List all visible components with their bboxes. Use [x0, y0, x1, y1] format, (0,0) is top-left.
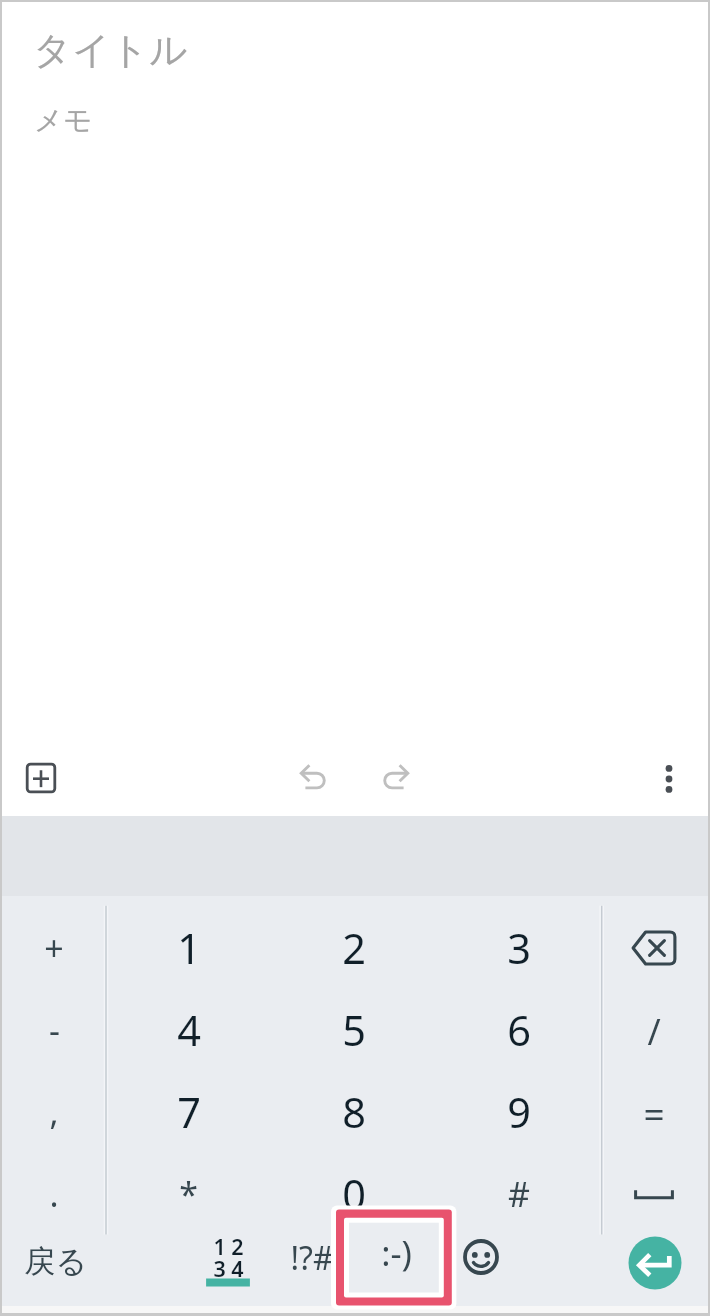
staticText: 4	[177, 1002, 201, 1059]
staticText: -	[49, 1007, 60, 1053]
button[interactable]: More options	[638, 748, 700, 810]
staticText: !?#	[290, 1236, 334, 1280]
staticText: *	[179, 1171, 198, 1217]
button[interactable]: Redo	[365, 746, 427, 808]
staticText: ,	[49, 1089, 59, 1135]
staticText: 戻る	[24, 1242, 87, 1281]
button[interactable]: =	[601, 1071, 707, 1153]
button[interactable]: Switch input mode	[186, 1235, 270, 1306]
button[interactable]: 3	[436, 907, 601, 989]
staticText: 1 2 3 4	[213, 1232, 244, 1283]
button[interactable]: :-)	[354, 1222, 438, 1282]
button[interactable]: !?#	[270, 1222, 354, 1293]
button[interactable]: 4	[106, 989, 271, 1071]
button[interactable]: 9	[436, 1071, 601, 1153]
button[interactable]: .	[2, 1153, 106, 1235]
button[interactable]: ,	[2, 1071, 106, 1153]
button[interactable]: 6	[436, 989, 601, 1071]
staticText: 0	[342, 1166, 366, 1223]
staticText: =	[643, 1088, 665, 1138]
button[interactable]: 戻る	[3, 1226, 107, 1297]
button[interactable]: /	[601, 989, 707, 1071]
button[interactable]: 2	[271, 907, 436, 989]
staticText: 8	[342, 1084, 366, 1141]
button[interactable]: Backspace	[601, 907, 707, 989]
button[interactable]: -	[2, 989, 106, 1071]
staticText: #	[508, 1171, 530, 1217]
staticText: タイトル	[33, 27, 188, 75]
staticText: 7	[177, 1084, 201, 1141]
button[interactable]: 8	[271, 1071, 436, 1153]
staticText: 2	[342, 920, 366, 977]
staticText: メモ	[34, 103, 93, 139]
button[interactable]: Note text field	[0, 2, 710, 816]
button[interactable]: 1	[106, 907, 271, 989]
staticText: +	[44, 925, 64, 971]
button[interactable]: 5	[271, 989, 436, 1071]
staticText: 3	[507, 920, 531, 977]
staticText: 5	[342, 1002, 366, 1059]
staticText: 1	[177, 920, 201, 977]
staticText: 9	[507, 1084, 531, 1141]
staticText: .	[49, 1171, 59, 1217]
button[interactable]: Enter	[602, 1227, 708, 1298]
button[interactable]: Undo	[282, 746, 344, 808]
button[interactable]: Add	[10, 747, 72, 809]
staticText: 6	[507, 1002, 531, 1059]
button[interactable]: *	[106, 1153, 271, 1235]
button[interactable]: #	[436, 1153, 601, 1235]
staticText: :-)	[381, 1229, 412, 1276]
button[interactable]: +	[2, 907, 106, 989]
button[interactable]: Emoji	[439, 1221, 523, 1292]
button[interactable]: 0	[271, 1153, 436, 1235]
button[interactable]: Space	[601, 1153, 707, 1235]
button[interactable]: 7	[106, 1071, 271, 1153]
staticText: /	[647, 1007, 661, 1055]
